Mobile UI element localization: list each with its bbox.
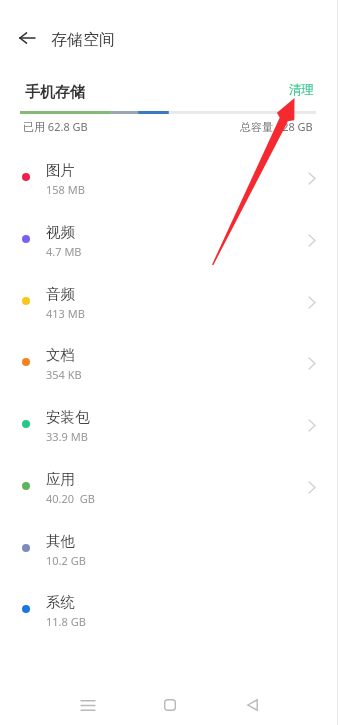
- staticText: 11.8 GB: [46, 614, 86, 629]
- staticText: 视频: [46, 223, 75, 241]
- button[interactable]: 其他: [0, 519, 340, 580]
- staticText: 4.7 MB: [46, 244, 82, 259]
- button[interactable]: 清理: [284, 79, 318, 101]
- button[interactable]: Recent apps: [60, 685, 116, 725]
- staticText: 413 MB: [46, 306, 85, 321]
- button[interactable]: 音频: [0, 272, 340, 333]
- staticText: 文档: [46, 346, 75, 364]
- staticText: 系统: [46, 593, 75, 611]
- staticText: 手机存储: [25, 83, 85, 102]
- staticText: 158 MB: [46, 182, 85, 197]
- button[interactable]: 视频: [0, 210, 340, 271]
- staticText: 图片: [46, 161, 75, 179]
- staticText: 音频: [46, 285, 75, 303]
- staticText: 40.20 GB: [46, 491, 95, 506]
- staticText: 其他: [46, 532, 75, 550]
- button[interactable]: 应用: [0, 457, 340, 518]
- staticText: 应用: [46, 470, 75, 488]
- button[interactable]: 安装包: [0, 395, 340, 456]
- staticText: 10.2 GB: [46, 553, 86, 568]
- staticText: 已用 62.8 GB: [23, 119, 88, 134]
- button[interactable]: Back: [3, 18, 51, 57]
- button[interactable]: 文档: [0, 333, 340, 394]
- staticText: 33.9 MB: [46, 429, 88, 444]
- button[interactable]: 图片: [0, 148, 340, 209]
- button[interactable]: Back: [224, 685, 280, 725]
- button[interactable]: 系统: [0, 580, 340, 641]
- staticText: 354 KB: [46, 367, 82, 382]
- staticText: 安装包: [46, 408, 90, 426]
- button[interactable]: Home: [142, 685, 198, 725]
- staticText: 存储空间: [51, 30, 115, 50]
- staticText: 清理: [289, 82, 314, 98]
- staticText: 总容量 128 GB: [240, 119, 313, 134]
